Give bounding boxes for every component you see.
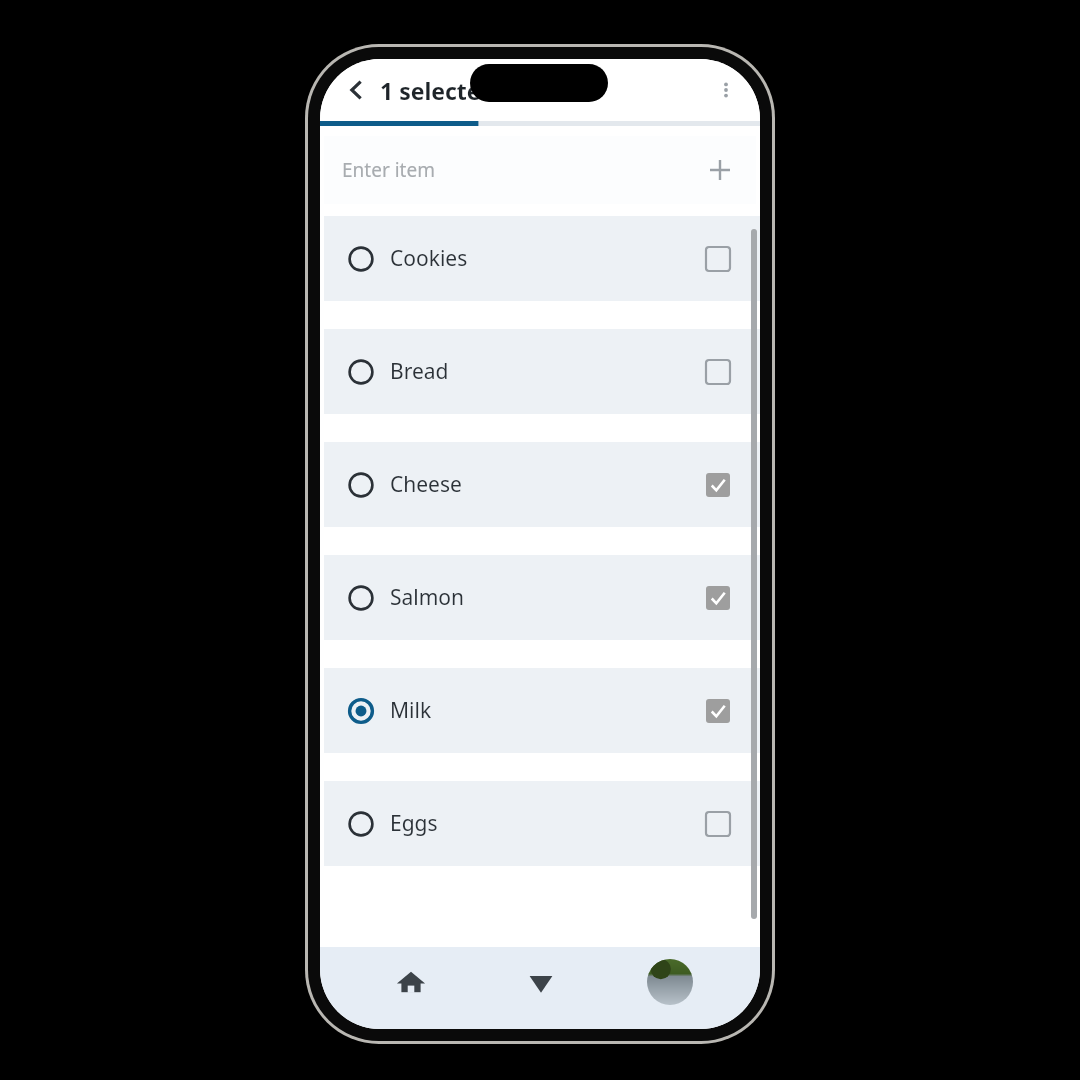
staticText: Cheese (390, 470, 462, 499)
button[interactable]: Bread (324, 329, 760, 414)
button[interactable]: Enter item (324, 136, 756, 204)
staticText: Salmon (390, 583, 465, 612)
staticText: 1 selected item (380, 75, 555, 106)
button[interactable]: Home (346, 947, 476, 1029)
button[interactable]: More options (706, 70, 746, 110)
button[interactable]: Salmon (324, 555, 760, 640)
staticText: Bread (390, 357, 449, 386)
staticText: Cookies (390, 244, 468, 273)
button[interactable]: Cookies (324, 216, 760, 301)
button[interactable]: Add item (700, 150, 740, 190)
button[interactable]: Cheese (324, 442, 760, 527)
button[interactable]: Profile (605, 947, 734, 1029)
button[interactable]: Rewards (476, 947, 605, 1029)
button[interactable]: Eggs (324, 781, 760, 866)
button[interactable]: Milk (324, 668, 760, 753)
button[interactable]: Back (336, 68, 380, 112)
staticText: Enter item (342, 157, 435, 183)
staticText: Eggs (390, 809, 438, 838)
staticText: Milk (390, 696, 432, 725)
